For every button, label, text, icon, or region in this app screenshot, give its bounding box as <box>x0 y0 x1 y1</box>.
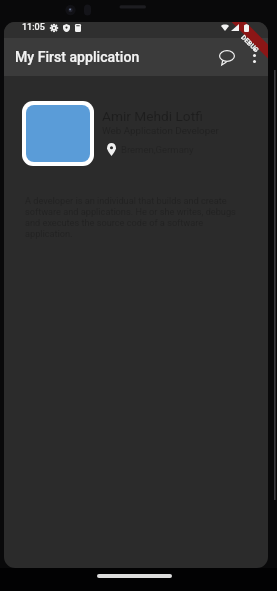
button[interactable]: More options <box>241 42 267 68</box>
staticText: Amir Mehdi Lotfi <box>102 108 203 124</box>
button[interactable]: Messages <box>212 42 242 72</box>
staticText: 11:05 <box>22 22 45 33</box>
staticText: DEBUG <box>239 33 261 55</box>
staticText: My First application <box>15 49 140 66</box>
